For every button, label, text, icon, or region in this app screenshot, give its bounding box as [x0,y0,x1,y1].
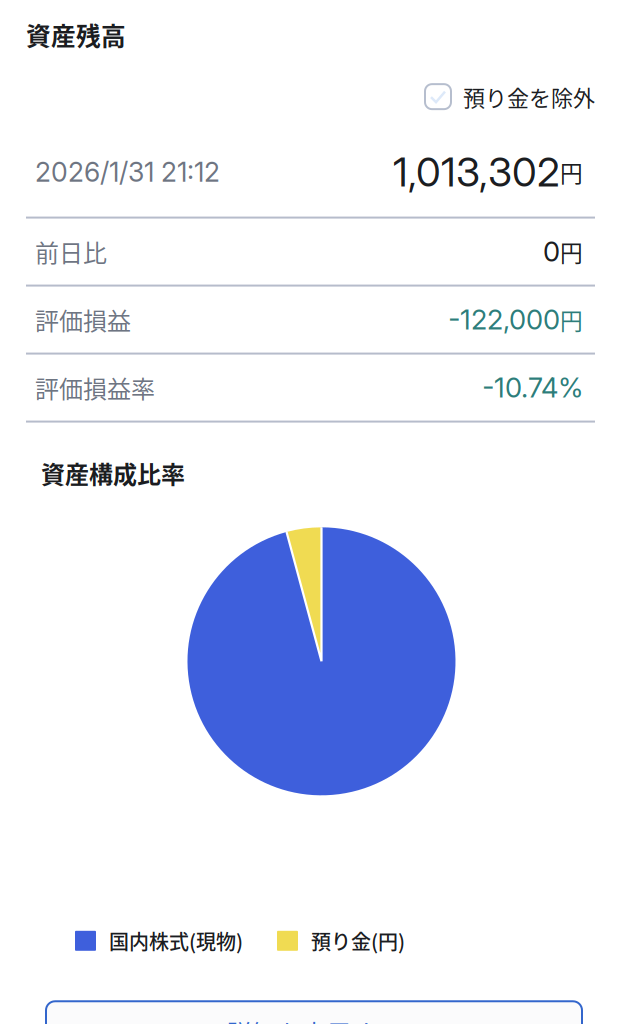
staticText: 資産残高 [26,17,126,53]
staticText: 評価損益率 [35,370,155,405]
staticText: 0 [543,235,560,268]
staticText: 預り金を除外 [463,81,595,113]
staticText: 1,013,302 [393,148,560,196]
staticText: 円 [560,303,583,336]
staticText: -122,000 [448,303,560,336]
staticText: 詳細を表示する [226,1014,401,1024]
staticText: 前日比 [35,234,107,269]
staticText: 国内株式(現物) [109,926,243,955]
button[interactable]: 詳細を表示する [46,1001,582,1024]
staticText: 2026/1/31 21:12 [35,156,220,188]
staticText: 円 [560,156,583,188]
staticText: 資産構成比率 [41,456,185,490]
staticText: -10.74% [482,371,583,404]
staticText: 円 [560,235,583,268]
button[interactable]: 預り金を除外 [425,81,595,113]
staticText: 評価損益 [35,302,131,337]
staticText: 預り金(円) [311,926,405,955]
